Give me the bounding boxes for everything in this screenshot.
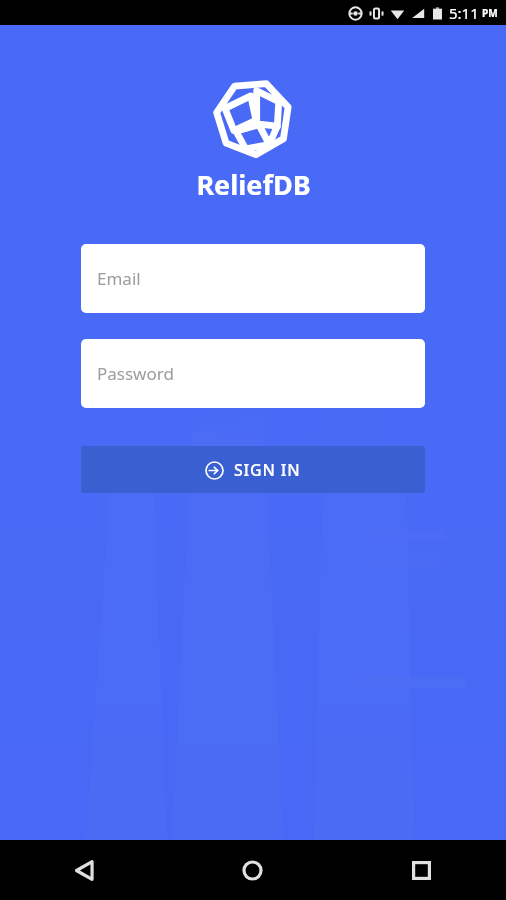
staticText: Password [97,362,174,385]
button[interactable]: Password [81,339,425,408]
button[interactable]: Back [0,840,168,900]
staticText: PM [482,6,498,20]
button[interactable]: Recent apps [337,840,506,900]
button[interactable]: Sign in [81,446,425,493]
staticText: 5:11 [449,3,479,23]
staticText: Email [97,267,141,290]
button[interactable]: Home [168,840,337,900]
button[interactable]: Email [81,244,425,313]
other: Sign in [205,461,224,480]
staticText: ReliefDB [196,166,311,203]
staticText: SIGN IN [234,459,301,481]
